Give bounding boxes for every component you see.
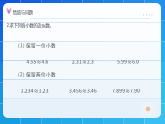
staticText: 2.求下列各小数的近似数。 <box>6 22 53 28</box>
staticText: 7.899≈7.90 <box>112 87 140 94</box>
staticText: 5.99≈6.0 <box>117 58 139 65</box>
staticText: 情境与问题 <box>13 9 33 15</box>
staticText: 4.55≈4.6 <box>26 58 48 65</box>
staticText: 2.31≈2.3 <box>72 58 94 65</box>
staticText: 3.456≈3.46 <box>69 87 97 94</box>
staticText: (2) 保留两位小数 <box>18 71 56 78</box>
staticText: 1.234≈1.23 <box>21 87 49 94</box>
staticText: (1) 保留一位小数 <box>18 42 56 49</box>
